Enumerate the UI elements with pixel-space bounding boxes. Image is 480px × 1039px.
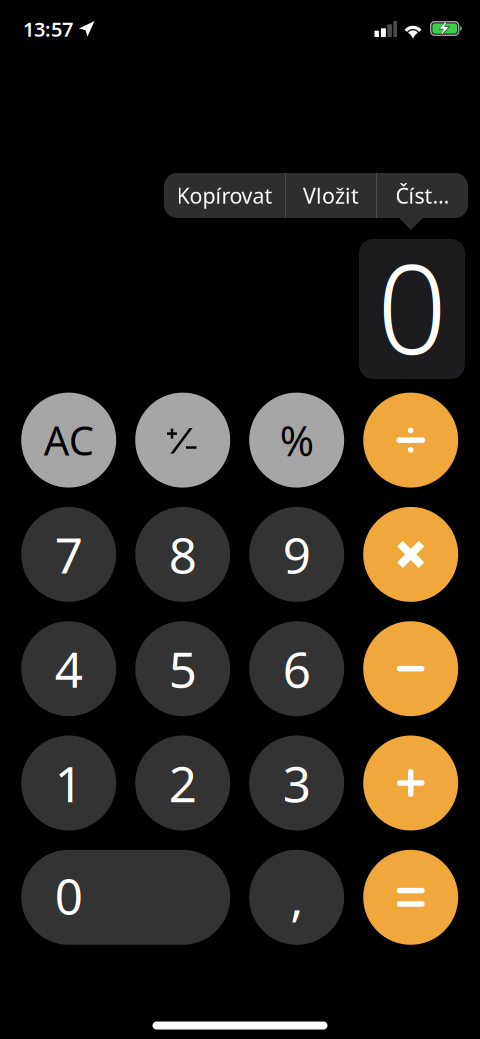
button[interactable]: Multiply: [363, 507, 458, 602]
button[interactable]: %: [249, 393, 344, 488]
button[interactable]: Plus minus: [135, 393, 230, 488]
button[interactable]: 3: [249, 735, 344, 830]
staticText: 0: [377, 225, 447, 388]
staticText: %: [280, 413, 314, 468]
button[interactable]: 2: [135, 735, 230, 830]
staticText: 13:57: [23, 16, 73, 42]
staticText: 0: [55, 862, 83, 928]
staticText: AC: [44, 413, 94, 467]
staticText: 3: [283, 750, 311, 816]
button[interactable]: Kopírovat: [164, 173, 285, 218]
button[interactable]: Minus: [363, 621, 458, 716]
staticText: 4: [55, 636, 83, 701]
button[interactable]: Equals: [363, 850, 458, 945]
button[interactable]: 0: [21, 850, 230, 945]
button[interactable]: 7: [21, 507, 116, 602]
staticText: Vložit: [303, 181, 359, 210]
button[interactable]: Plus: [363, 735, 458, 830]
staticText: 6: [283, 636, 311, 701]
button[interactable]: 4: [21, 621, 116, 716]
staticText: 8: [169, 522, 197, 587]
button[interactable]: Divide: [363, 393, 458, 488]
button[interactable]: Vložit: [286, 173, 376, 218]
button[interactable]: 5: [135, 621, 230, 716]
button[interactable]: 9: [249, 507, 344, 602]
button[interactable]: Číst…: [377, 173, 468, 218]
staticText: Číst…: [395, 181, 449, 210]
button[interactable]: AC: [21, 393, 116, 488]
staticText: 5: [169, 636, 197, 701]
staticText: 7: [55, 522, 83, 587]
staticText: 2: [169, 750, 197, 816]
staticText: 9: [283, 522, 311, 587]
staticText: ,: [290, 864, 303, 930]
staticText: 1: [55, 750, 83, 816]
button[interactable]: ,: [249, 850, 344, 945]
button[interactable]: 8: [135, 507, 230, 602]
button[interactable]: 1: [21, 735, 116, 830]
button[interactable]: 6: [249, 621, 344, 716]
staticText: Kopírovat: [176, 181, 272, 210]
